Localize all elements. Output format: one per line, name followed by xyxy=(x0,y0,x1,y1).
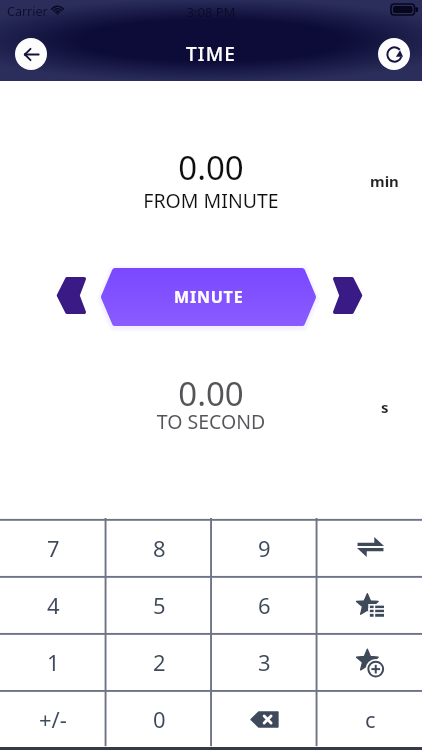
staticText: TO SECOND xyxy=(0,408,422,435)
staticText: 5 xyxy=(153,590,166,620)
other: Add to favorites xyxy=(356,649,384,676)
button[interactable]: 5 xyxy=(106,576,212,633)
button[interactable]: Swap units xyxy=(317,519,422,576)
staticText: Carrier xyxy=(7,3,48,20)
button[interactable]: c xyxy=(317,690,422,747)
staticText: 3 xyxy=(258,647,271,677)
other: Backspace xyxy=(251,712,278,727)
staticText: TIME xyxy=(0,41,422,67)
button[interactable]: 0 xyxy=(106,690,212,747)
staticText: 0.00 xyxy=(0,371,422,416)
button[interactable]: MINUTE xyxy=(101,268,316,326)
button[interactable]: +/- xyxy=(0,690,106,747)
button[interactable]: Next unit xyxy=(333,277,363,314)
other: Swap units xyxy=(357,537,384,557)
staticText: 3:08 PM xyxy=(0,3,422,21)
button[interactable]: 2 xyxy=(106,633,212,690)
other: Favorites list xyxy=(356,593,384,618)
staticText: FROM MINUTE xyxy=(0,187,422,214)
staticText: 8 xyxy=(153,533,166,563)
button[interactable]: Backspace xyxy=(211,690,317,747)
staticText: 1 xyxy=(47,647,60,677)
staticText: min xyxy=(370,171,399,191)
button[interactable]: Favorites list xyxy=(317,576,422,633)
staticText: 0 xyxy=(153,704,166,734)
button[interactable]: Refresh xyxy=(378,38,410,70)
button[interactable]: 4 xyxy=(0,576,106,633)
staticText: 9 xyxy=(258,533,271,563)
staticText: c xyxy=(365,704,376,734)
button[interactable]: 1 xyxy=(0,633,106,690)
button[interactable]: Previous unit xyxy=(56,277,86,314)
staticText: MINUTE xyxy=(174,286,244,308)
button[interactable]: 6 xyxy=(211,576,317,633)
button[interactable]: Add to favorites xyxy=(317,633,422,690)
staticText: 0.00 xyxy=(0,145,422,190)
staticText: 4 xyxy=(47,590,60,620)
staticText: 7 xyxy=(47,533,60,563)
button[interactable]: Back xyxy=(15,38,47,70)
staticText: +/- xyxy=(39,704,67,734)
button[interactable]: 8 xyxy=(106,519,212,576)
button[interactable]: 3 xyxy=(211,633,317,690)
staticText: s xyxy=(381,397,389,417)
button[interactable]: 7 xyxy=(0,519,106,576)
staticText: 2 xyxy=(153,647,166,677)
staticText: 6 xyxy=(258,590,271,620)
button[interactable]: 9 xyxy=(211,519,317,576)
